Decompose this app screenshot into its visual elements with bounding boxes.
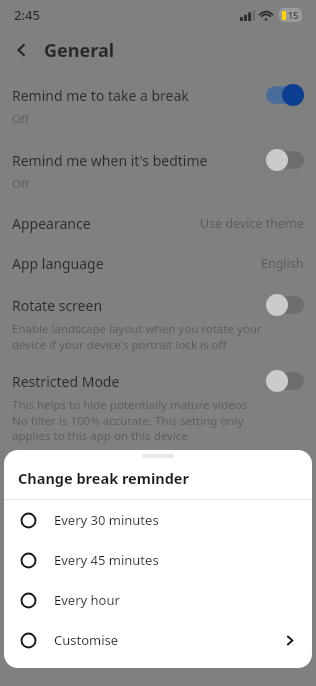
button[interactable]: Back (0, 30, 44, 70)
button[interactable]: Toggle off (266, 370, 304, 392)
button[interactable]: Remind me to take a break (0, 84, 316, 127)
button[interactable]: Every 30 minutes (4, 500, 312, 540)
button[interactable]: Toggle on (266, 84, 304, 106)
staticText: Every 30 minutes (54, 511, 296, 529)
staticText: English (261, 255, 304, 272)
staticText: Off (12, 176, 263, 192)
staticText: Enable landscape layout when you rotate … (12, 321, 263, 352)
staticText: Remind me to take a break (12, 86, 258, 105)
staticText: Every 45 minutes (54, 551, 296, 569)
staticText: Appearance (12, 214, 200, 233)
button[interactable]: Toggle off (266, 149, 304, 171)
button[interactable]: Customise (4, 620, 312, 660)
staticText: Every hour (54, 591, 296, 609)
staticText: Use device theme (200, 215, 304, 232)
button[interactable]: Rotate screen (0, 294, 316, 352)
staticText: 2:45 (14, 6, 40, 24)
staticText: Remind me when it's bedtime (12, 151, 258, 170)
button[interactable]: Appearance (0, 214, 316, 233)
staticText: App language (12, 254, 261, 273)
button[interactable]: App language (0, 254, 316, 273)
button[interactable]: Toggle off (266, 294, 304, 316)
staticText: Rotate screen (12, 296, 258, 315)
button[interactable]: Every hour (4, 580, 312, 620)
staticText: Change break reminder (18, 468, 189, 488)
button[interactable]: Remind me when it's bedtime (0, 149, 316, 192)
button[interactable]: Restricted Mode (0, 370, 316, 443)
staticText: Off (12, 111, 263, 127)
staticText: Restricted Mode (12, 372, 258, 391)
staticText: General (44, 38, 115, 63)
staticText: 15 (288, 9, 299, 21)
staticText: This helps to hide potentially mature vi… (12, 397, 263, 443)
button[interactable]: Every 45 minutes (4, 540, 312, 580)
staticText: Customise (54, 631, 283, 649)
